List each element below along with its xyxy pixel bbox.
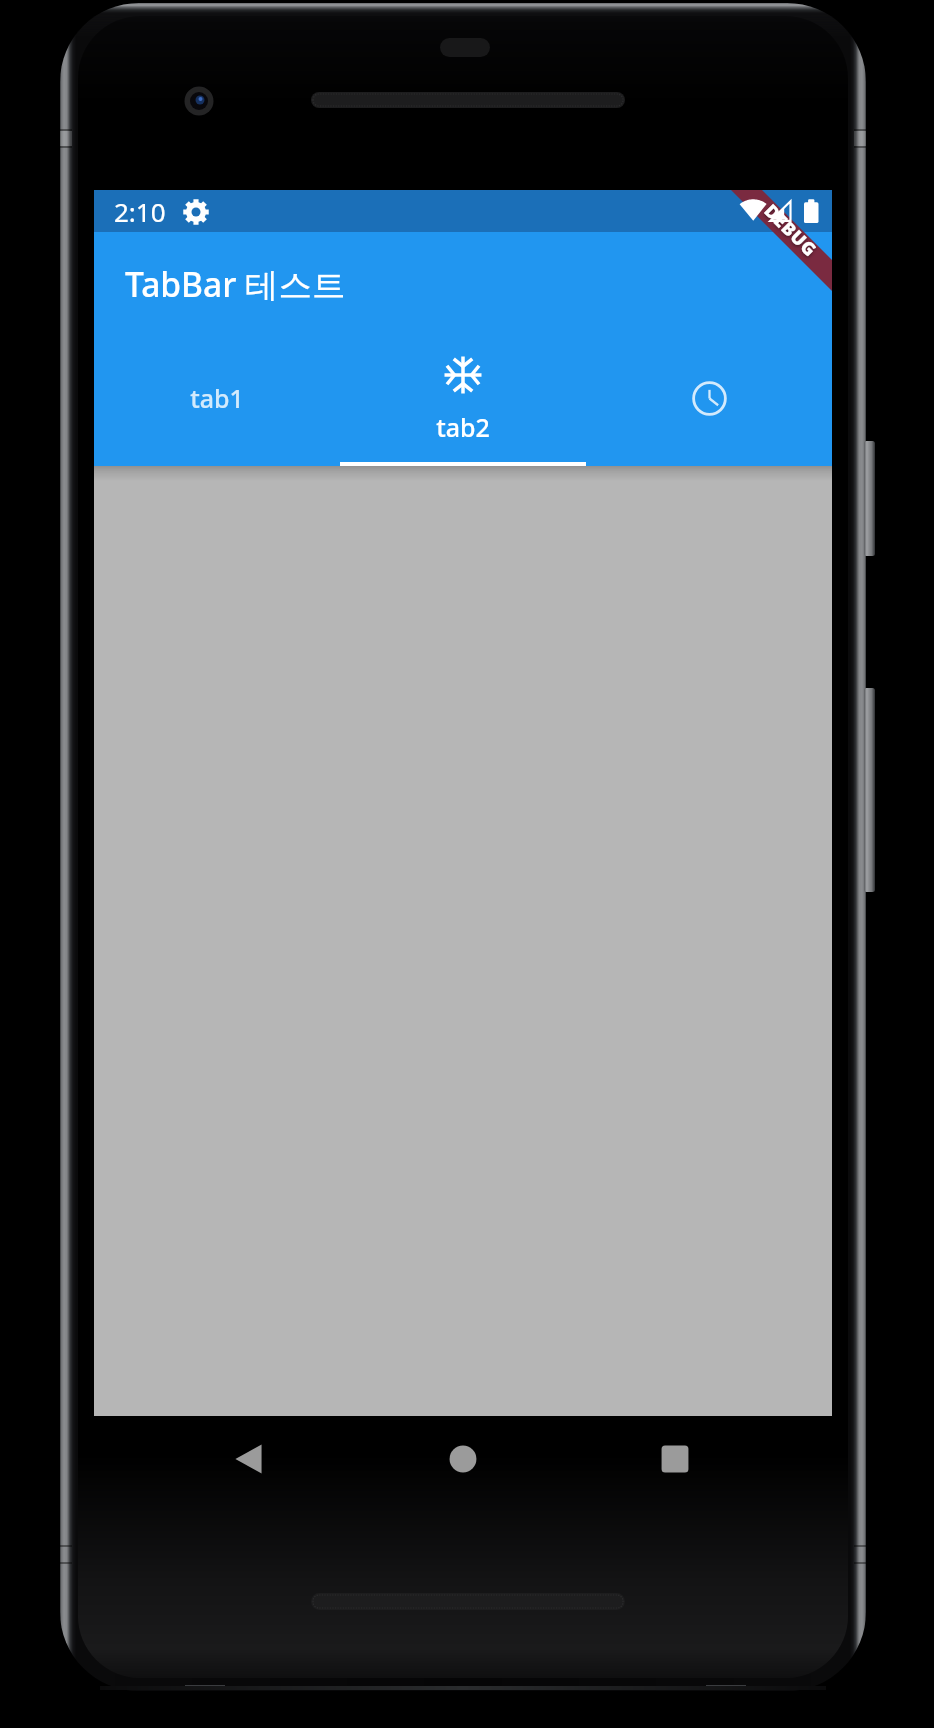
button[interactable]: Home <box>380 1416 546 1506</box>
button[interactable]: tab2 <box>340 330 586 466</box>
button[interactable]: Back <box>166 1416 332 1506</box>
staticText: tab1 <box>190 381 244 415</box>
button[interactable]: tab1 <box>94 330 340 466</box>
staticText: DEBUG <box>759 199 822 262</box>
staticText: TabBar 테스트 <box>125 261 346 307</box>
button[interactable]: Recent apps <box>592 1416 758 1506</box>
staticText: tab2 <box>436 410 490 444</box>
staticText: 2:10 <box>114 194 166 229</box>
button[interactable]: History tab <box>586 330 832 466</box>
